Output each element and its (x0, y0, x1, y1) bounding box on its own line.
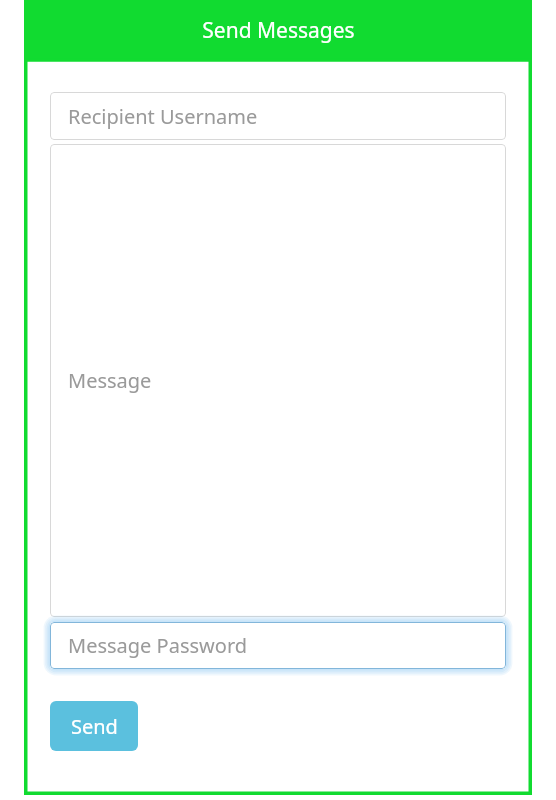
staticText: Recipient Username (68, 103, 258, 130)
button[interactable]: Send (50, 701, 138, 751)
staticText: Send Messages (202, 16, 355, 45)
button[interactable]: Recipient Username (50, 92, 506, 140)
button[interactable]: Message Password (50, 622, 506, 669)
staticText: Send (71, 713, 118, 740)
staticText: Message Password (68, 632, 248, 659)
staticText: Message (68, 367, 152, 394)
button[interactable]: Message (50, 144, 506, 617)
